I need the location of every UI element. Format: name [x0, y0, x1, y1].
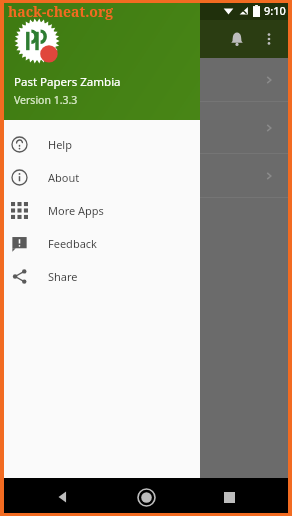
- staticText: Share: [48, 269, 78, 284]
- staticText: More Apps: [48, 203, 104, 218]
- staticText: Version 1.3.3: [14, 93, 78, 107]
- button[interactable]: More options: [254, 24, 284, 54]
- staticText: hack-cheat.org: [8, 2, 114, 21]
- button[interactable]: Feedback: [0, 227, 200, 260]
- button[interactable]: Recent apps: [209, 478, 249, 516]
- staticText: 9:10: [264, 3, 286, 18]
- button[interactable]: [0, 58, 292, 102]
- button[interactable]: Home: [126, 478, 166, 516]
- button[interactable]: Help: [0, 128, 200, 161]
- button[interactable]: Back: [43, 478, 83, 516]
- button[interactable]: Notifications: [220, 22, 254, 56]
- button[interactable]: [0, 102, 292, 154]
- button[interactable]: [0, 154, 292, 198]
- button[interactable]: More Apps: [0, 194, 200, 227]
- staticText: Past Papers Zambia: [14, 74, 121, 90]
- staticText: Feedback: [48, 236, 97, 251]
- staticText: Help: [48, 137, 72, 152]
- button[interactable]: Share: [0, 260, 200, 293]
- button[interactable]: About: [0, 161, 200, 194]
- staticText: About: [48, 170, 80, 185]
